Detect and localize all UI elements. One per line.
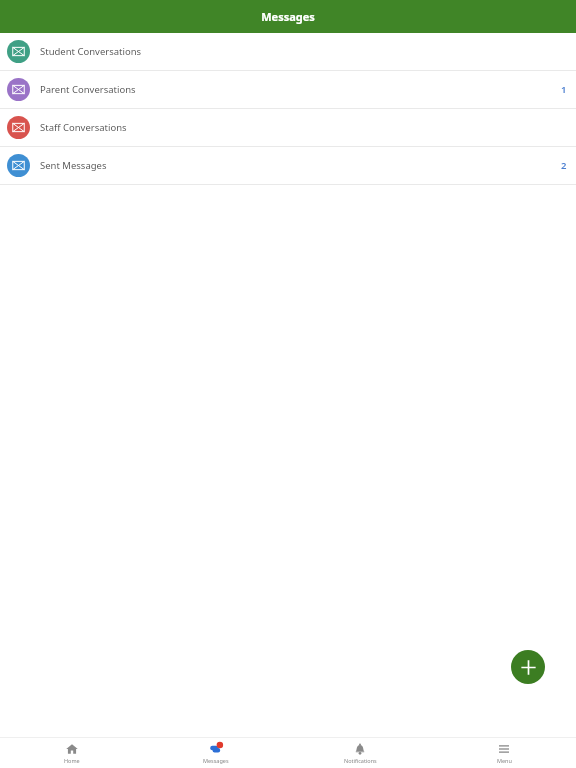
button[interactable]: Home bbox=[0, 738, 144, 768]
button[interactable]: Parent Conversations bbox=[0, 71, 576, 109]
staticText: 1 bbox=[561, 83, 567, 96]
staticText: Student Conversations bbox=[40, 45, 142, 58]
button[interactable]: Sent Messages bbox=[0, 147, 576, 185]
staticText: Messages bbox=[261, 9, 315, 24]
staticText: Home bbox=[64, 757, 80, 764]
button[interactable]: Student Conversations bbox=[0, 33, 576, 71]
button[interactable]: New message bbox=[511, 650, 545, 684]
staticText: Notifications bbox=[344, 757, 377, 764]
staticText: Menu bbox=[497, 757, 512, 764]
staticText: Messages bbox=[203, 757, 229, 764]
button[interactable]: Menu bbox=[432, 738, 576, 768]
staticText: 2 bbox=[561, 159, 567, 172]
staticText: Staff Conversations bbox=[40, 121, 127, 134]
staticText: Sent Messages bbox=[40, 159, 107, 172]
button[interactable]: Notifications bbox=[288, 738, 432, 768]
button[interactable]: Staff Conversations bbox=[0, 109, 576, 147]
staticText: Parent Conversations bbox=[40, 83, 136, 96]
button[interactable]: Messages bbox=[144, 738, 288, 768]
